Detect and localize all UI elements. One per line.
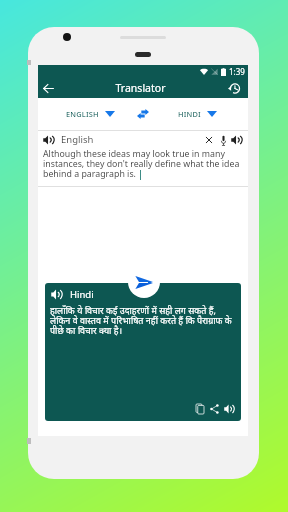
button[interactable]: Share [208, 402, 221, 415]
staticText: 1:39 [229, 66, 245, 77]
staticText: Hindi [70, 288, 94, 301]
button[interactable]: Copy [193, 402, 206, 415]
button[interactable]: History [223, 78, 244, 98]
button[interactable]: Clear [203, 134, 215, 146]
button[interactable]: Swap languages [133, 104, 153, 124]
button[interactable]: Speak translation [223, 402, 236, 415]
button[interactable]: Speak [231, 134, 243, 146]
staticText: हालाँकि ये विचार कई उदाहरणों में सही लग … [50, 304, 238, 336]
button[interactable]: ENGLISH [62, 104, 119, 124]
staticText: ENGLISH [66, 109, 99, 119]
staticText: HINDI [178, 109, 201, 119]
button[interactable]: HINDI [174, 104, 221, 124]
button[interactable]: Microphone [217, 134, 229, 146]
button[interactable]: Back [38, 78, 58, 98]
button[interactable]: Translate [128, 266, 160, 298]
staticText: Although these ideas may look true in ma… [43, 148, 245, 179]
staticText: English [61, 133, 94, 146]
staticText: Translator [58, 81, 223, 95]
